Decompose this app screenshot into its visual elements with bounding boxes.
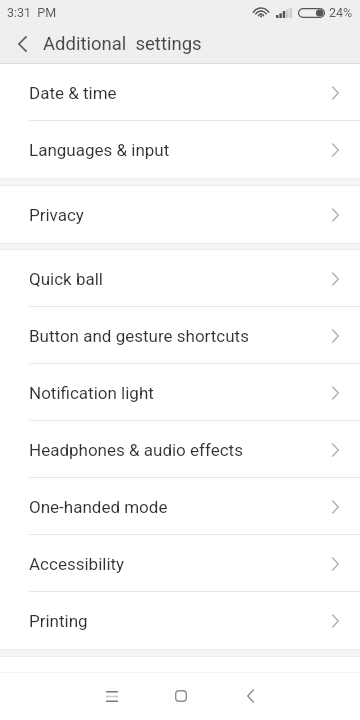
staticText: Additional settings xyxy=(43,33,202,55)
staticText: Printing xyxy=(29,611,332,631)
button[interactable]: Headphones & audio effects xyxy=(0,421,360,478)
staticText: 3:31 PM xyxy=(7,5,57,20)
button[interactable]: Languages & input xyxy=(0,121,360,178)
staticText: Quick ball xyxy=(29,269,332,289)
staticText: One-handed mode xyxy=(29,497,332,517)
staticText: Headphones & audio effects xyxy=(29,440,332,460)
button[interactable]: Back xyxy=(228,672,272,720)
button[interactable]: Menu xyxy=(90,672,134,720)
button[interactable]: Home xyxy=(159,672,203,720)
button[interactable]: Notification light xyxy=(0,364,360,421)
button[interactable]: Printing xyxy=(0,592,360,649)
staticText: 24% xyxy=(329,5,353,20)
button[interactable]: Date & time xyxy=(0,64,360,121)
staticText: Date & time xyxy=(29,83,332,103)
button[interactable]: One-handed mode xyxy=(0,478,360,535)
button[interactable]: Accessibility xyxy=(0,535,360,592)
staticText: Accessibility xyxy=(29,554,332,574)
button[interactable]: Privacy xyxy=(0,186,360,243)
staticText: Languages & input xyxy=(29,140,332,160)
staticText: Button and gesture shortcuts xyxy=(29,326,332,346)
button[interactable]: Button and gesture shortcuts xyxy=(0,307,360,364)
staticText: Privacy xyxy=(29,205,332,225)
staticText: Notification light xyxy=(29,383,332,403)
button[interactable]: Quick ball xyxy=(0,250,360,307)
button[interactable]: Navigate up xyxy=(0,24,43,64)
